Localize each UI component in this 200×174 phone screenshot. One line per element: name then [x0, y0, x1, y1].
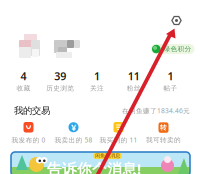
staticText: 我发布的 0: [11, 135, 45, 144]
button[interactable]: 绿色积分: [151, 44, 194, 54]
button[interactable]: 1: [152, 69, 189, 92]
staticText: 11: [128, 69, 140, 83]
staticText: 绿色积分: [163, 45, 191, 53]
staticText: 我可转卖的: [146, 136, 181, 144]
staticText: 闲鱼新消息: [95, 152, 120, 159]
button[interactable]: Profile photo: [18, 32, 40, 58]
button[interactable]: 4: [5, 69, 42, 92]
button[interactable]: 闲鱼新消息: [11, 152, 190, 174]
button[interactable]: ¥: [51, 122, 96, 144]
button[interactable]: 我发布的 0: [6, 122, 51, 144]
staticText: 我的交易: [14, 105, 50, 116]
button[interactable]: 1: [79, 69, 115, 92]
button[interactable]: Settings: [166, 10, 187, 31]
button[interactable]: 11: [115, 69, 152, 92]
button[interactable]: 转: [141, 122, 186, 144]
staticText: 转: [160, 123, 167, 132]
staticText: 关注: [90, 84, 104, 92]
staticText: 我卖出的 58: [54, 135, 92, 144]
staticText: 1: [168, 69, 174, 83]
staticText: 帖子: [164, 84, 178, 92]
staticText: 收藏: [16, 84, 30, 92]
staticText: 我买到的 11: [99, 135, 137, 144]
staticText: 4: [20, 69, 26, 83]
staticText: 1: [94, 69, 100, 83]
staticText: 粉丝: [127, 84, 141, 92]
button[interactable]: 39: [42, 69, 79, 92]
staticText: 39: [54, 69, 66, 83]
button[interactable]: 我买到的 11: [96, 122, 141, 144]
staticText: ¥: [71, 121, 76, 133]
staticText: 历史浏览: [46, 84, 74, 92]
staticText: 在闲鱼赚了1834.46元: [122, 106, 190, 115]
staticText: 告诉你个消息!: [47, 159, 141, 174]
